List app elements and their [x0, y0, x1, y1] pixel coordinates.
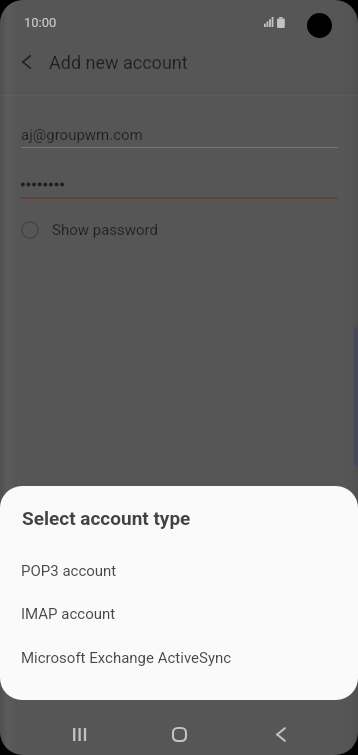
staticText: IMAP account [21, 605, 116, 623]
staticText: 10:00 [24, 15, 57, 30]
button[interactable]: IMAP account [0, 592, 358, 635]
staticText: aj@groupwm.com [21, 126, 143, 144]
staticText: Show password [52, 221, 159, 239]
staticText: Add new account [49, 52, 188, 73]
button[interactable]: Home [119, 700, 239, 755]
staticText: Select account type [22, 507, 191, 529]
button[interactable]: Microsoft Exchange ActiveSync [0, 636, 358, 679]
button[interactable]: Show password [0, 213, 358, 246]
button[interactable]: POP3 account [0, 549, 358, 592]
staticText: POP3 account [21, 562, 117, 580]
staticText: Microsoft Exchange ActiveSync [21, 649, 232, 667]
button[interactable]: Navigate up [8, 44, 44, 80]
button[interactable]: Back [239, 700, 358, 755]
button[interactable]: Recent apps [0, 700, 119, 755]
